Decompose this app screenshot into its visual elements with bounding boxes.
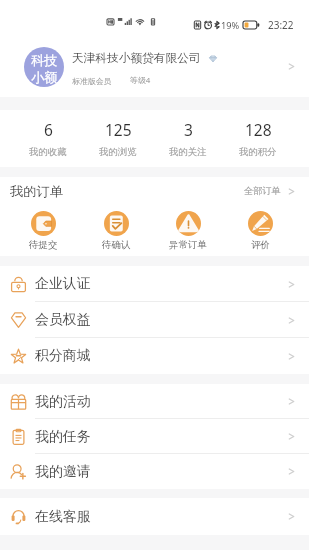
staticText: 我的浏览 xyxy=(99,146,137,158)
button[interactable]: 我的邀请 xyxy=(0,454,309,489)
staticText: 企业认证 xyxy=(35,275,91,293)
staticText: 128 xyxy=(245,119,272,140)
staticText: 评价 xyxy=(251,239,270,251)
button[interactable]: 评价 xyxy=(224,211,296,251)
staticText: 异常订单 xyxy=(169,239,207,251)
button[interactable]: 会员权益 xyxy=(0,302,309,338)
button[interactable]: 6 xyxy=(13,119,83,158)
staticText: 我的订单 xyxy=(10,183,64,200)
staticText: 天津科技小额贷有限公司 xyxy=(72,51,201,66)
button[interactable]: 企业认证 xyxy=(0,266,309,302)
staticText: 3 xyxy=(184,119,193,140)
staticText: 在线客服 xyxy=(35,508,91,526)
staticText: 我的收藏 xyxy=(29,146,67,158)
button[interactable]: 我的任务 xyxy=(0,419,309,454)
staticText: 积分商城 xyxy=(35,347,91,365)
staticText: 我的活动 xyxy=(35,393,91,411)
staticText: 125 xyxy=(105,119,132,140)
button[interactable]: 待提交 xyxy=(7,211,80,251)
staticText: 会员权益 xyxy=(35,311,91,329)
button[interactable]: 全部订单 xyxy=(242,182,297,200)
staticText: 19% xyxy=(221,19,240,32)
staticText: 小额 xyxy=(31,69,58,86)
staticText: 我的任务 xyxy=(35,428,91,446)
button[interactable]: 待确认 xyxy=(80,211,152,251)
button[interactable]: 积分商城 xyxy=(0,338,309,374)
button[interactable]: 异常订单 xyxy=(152,211,224,251)
staticText: 全部订单 xyxy=(244,185,281,197)
staticText: 标准版会员 xyxy=(72,76,112,86)
staticText: 我的关注 xyxy=(169,146,207,158)
button[interactable]: 在线客服 xyxy=(0,498,309,535)
staticText: 等级4 xyxy=(130,75,151,86)
staticText: 我的积分 xyxy=(239,146,277,158)
button[interactable]: 我的活动 xyxy=(0,384,309,419)
staticText: 我的邀请 xyxy=(35,463,91,481)
button[interactable]: 3 xyxy=(153,119,223,158)
staticText: 待提交 xyxy=(29,239,58,251)
button[interactable]: 128 xyxy=(223,119,293,158)
button[interactable]: 125 xyxy=(83,119,153,158)
button[interactable]: 科技 xyxy=(0,32,309,97)
staticText: 6 xyxy=(44,119,53,140)
staticText: 23:22 xyxy=(268,18,294,32)
staticText: 待确认 xyxy=(102,239,131,251)
staticText: 科技 xyxy=(31,52,58,69)
